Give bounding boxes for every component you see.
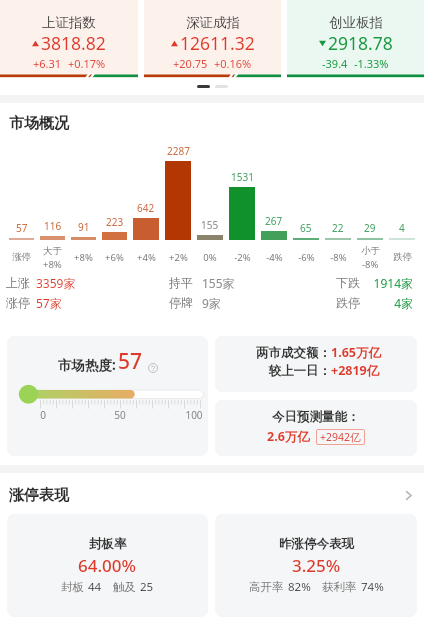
staticText: 停牌	[169, 295, 193, 310]
staticText: -1.33%	[354, 56, 389, 71]
staticText: 上证指数	[42, 14, 96, 31]
staticText: 创业板指	[329, 14, 383, 31]
staticText: +8%	[74, 251, 93, 264]
staticText: 1531	[231, 170, 254, 184]
staticText: 深证成指	[186, 14, 240, 31]
staticText: +0.17%	[68, 56, 106, 71]
button[interactable]: 涨停表现	[9, 486, 415, 505]
staticText: 57家	[36, 295, 62, 311]
staticText: 持平	[169, 275, 193, 290]
staticText: 封板率	[89, 536, 127, 552]
staticText: -6%	[298, 251, 315, 264]
staticText: 57	[16, 221, 28, 235]
staticText: +8%	[43, 258, 62, 269]
staticText: 大于	[43, 245, 62, 257]
staticText: +2942亿	[320, 430, 361, 444]
staticText: 涨停	[6, 295, 30, 310]
staticText: 12611.32	[180, 31, 255, 55]
button[interactable]: 创业板指	[287, 0, 424, 78]
staticText: 4家	[360, 295, 413, 311]
staticText: 44	[88, 579, 102, 595]
staticText: 跌停	[336, 295, 360, 310]
staticText: 0	[33, 408, 53, 422]
other: 说明	[148, 363, 158, 373]
staticText: -4%	[266, 251, 283, 264]
staticText: +6%	[105, 251, 124, 264]
staticText: 3818.82	[41, 31, 106, 55]
staticText: 昨涨停今表现	[279, 536, 354, 552]
staticText: 小于	[361, 245, 380, 257]
button[interactable]: 上证指数	[0, 0, 138, 78]
staticText: 64.00%	[78, 554, 137, 577]
staticText: 65	[300, 221, 312, 235]
staticText: 9家	[202, 295, 221, 311]
staticText: -8%	[330, 251, 347, 264]
staticText: 82%	[288, 579, 311, 595]
staticText: 2287	[167, 144, 190, 158]
staticText: 今日预测量能：	[272, 409, 360, 425]
staticText: 223	[106, 215, 124, 229]
staticText: 2918.78	[328, 31, 393, 55]
staticText: +2%	[169, 251, 188, 264]
staticText: -39.4	[322, 56, 348, 71]
staticText: 高开率	[249, 580, 284, 594]
staticText: 3359家	[36, 275, 76, 291]
button[interactable]: 两市成交额：	[215, 336, 417, 392]
staticText: 2.6万亿	[267, 428, 310, 445]
staticText: 获利率	[322, 580, 357, 594]
staticText: 155	[201, 218, 219, 232]
staticText: 22	[332, 221, 344, 235]
staticText: 4	[399, 221, 405, 235]
staticText: 155家	[202, 275, 235, 291]
staticText: +6.31	[33, 56, 62, 71]
staticText: 50	[110, 408, 130, 422]
staticText: 91	[78, 220, 90, 234]
staticText: 0%	[203, 251, 217, 264]
staticText: 116	[44, 219, 62, 233]
button[interactable]: 深证成指	[144, 0, 281, 78]
staticText: 涨停	[12, 251, 31, 263]
staticText: 3.25%	[292, 554, 341, 577]
staticText: 触及	[113, 580, 136, 594]
staticText: 100	[184, 408, 204, 422]
staticText: 57	[118, 347, 143, 376]
staticText: -8%	[362, 258, 379, 269]
button[interactable]: 封板率	[7, 514, 208, 617]
staticText: 上涨	[6, 275, 30, 290]
staticText: 1914家	[360, 275, 413, 291]
staticText: 29	[364, 221, 376, 235]
staticText: +4%	[137, 251, 156, 264]
staticText: 较上一日：	[251, 363, 331, 379]
staticText: +2819亿	[331, 362, 380, 379]
staticText: +0.16%	[214, 56, 252, 71]
staticText: 两市成交额：	[251, 345, 331, 361]
staticText: 25	[140, 579, 154, 595]
staticText: 跌停	[393, 251, 412, 263]
staticText: 74%	[361, 579, 384, 595]
staticText: 1.65万亿	[331, 344, 381, 361]
staticText: 下跌	[336, 275, 360, 290]
staticText: 267	[265, 214, 283, 228]
button[interactable]: 昨涨停今表现	[215, 514, 417, 617]
staticText: -2%	[234, 251, 251, 264]
staticText: +20.75	[173, 56, 208, 71]
button[interactable]: 今日预测量能：	[215, 400, 417, 456]
other: 更多	[402, 489, 415, 502]
staticText: 涨停表现	[9, 486, 69, 505]
staticText: 642	[137, 201, 155, 215]
staticText: 封板	[61, 580, 84, 594]
staticText: 市场概况	[9, 114, 69, 133]
button[interactable]: 市场热度:	[7, 336, 208, 456]
staticText: 市场热度:	[58, 356, 116, 374]
